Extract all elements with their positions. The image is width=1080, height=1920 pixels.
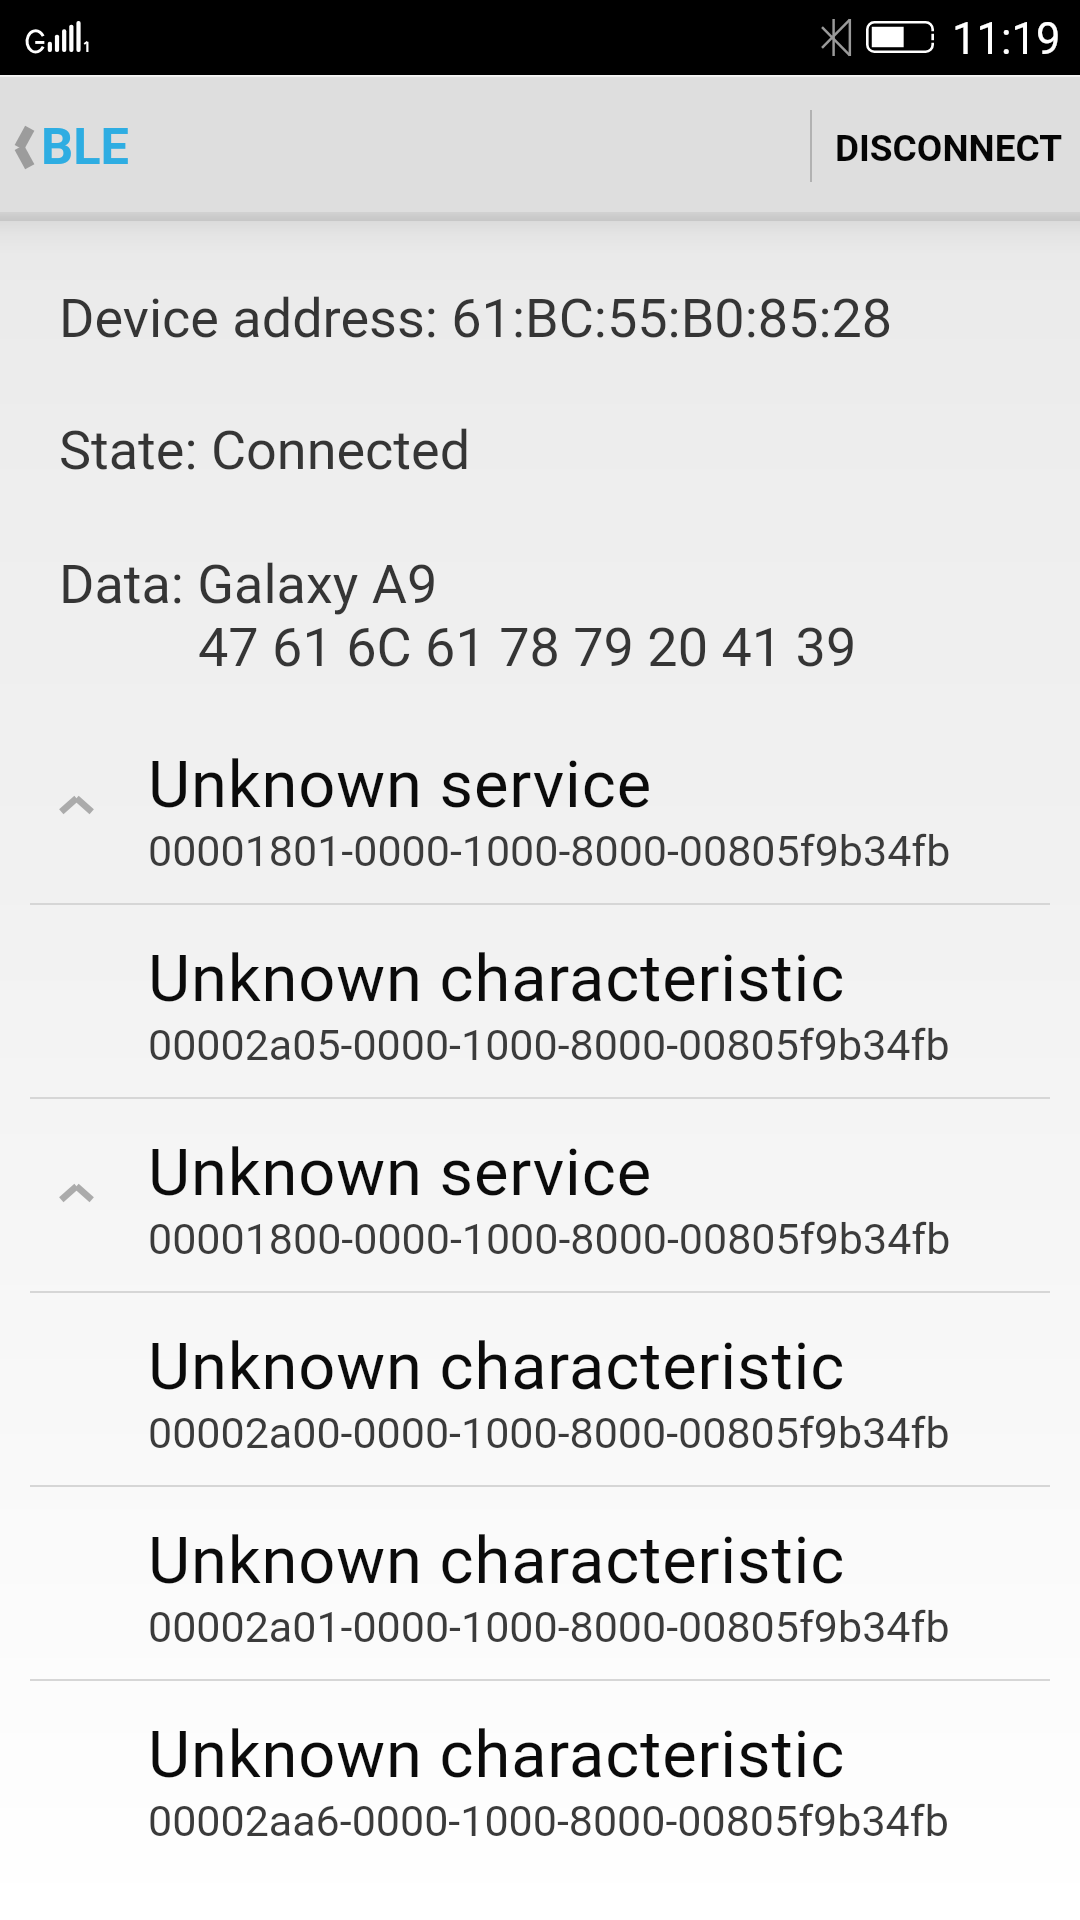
button[interactable]: Unknown characteristic [0, 905, 1080, 1097]
staticText: DISCONNECT [835, 127, 1063, 170]
staticText: State: Connected [59, 419, 471, 482]
staticText: Data: Galaxy A9 [59, 553, 438, 616]
button[interactable]: Collapse service [43, 783, 110, 827]
staticText: Unknown characteristic [148, 941, 846, 1017]
staticText: 47 61 6C 61 78 79 20 41 39 [198, 616, 857, 679]
button[interactable]: DISCONNECT [815, 101, 1080, 186]
staticText: Unknown characteristic [148, 1523, 846, 1599]
button[interactable]: Collapse service [0, 1099, 1080, 1291]
staticText: 11:19 [952, 14, 1061, 65]
staticText: 00002a00-0000-1000-8000-00805f9b34fb [148, 1408, 950, 1458]
button[interactable]: Unknown characteristic [0, 1681, 1080, 1873]
button[interactable]: Navigate up to BLE [0, 101, 165, 186]
staticText: Device address: 61:BC:55:B0:85:28 [59, 287, 893, 350]
staticText: 00002a05-0000-1000-8000-00805f9b34fb [148, 1020, 950, 1070]
staticText: Unknown characteristic [148, 1717, 846, 1793]
button[interactable]: Unknown characteristic [0, 1293, 1080, 1485]
staticText: 00001800-0000-1000-8000-00805f9b34fb [148, 1214, 951, 1264]
button[interactable]: Collapse service [43, 1171, 110, 1215]
button[interactable]: Collapse service [0, 711, 1080, 903]
staticText: 00002aa6-0000-1000-8000-00805f9b34fb [148, 1796, 949, 1846]
staticText: BLE [41, 117, 129, 176]
staticText: Unknown service [148, 1135, 652, 1211]
staticText: 00001801-0000-1000-8000-00805f9b34fb [148, 826, 951, 876]
staticText: Unknown service [148, 747, 652, 823]
button[interactable]: Unknown characteristic [0, 1487, 1080, 1679]
staticText: 00002a01-0000-1000-8000-00805f9b34fb [148, 1602, 950, 1652]
staticText: Unknown characteristic [148, 1329, 846, 1405]
